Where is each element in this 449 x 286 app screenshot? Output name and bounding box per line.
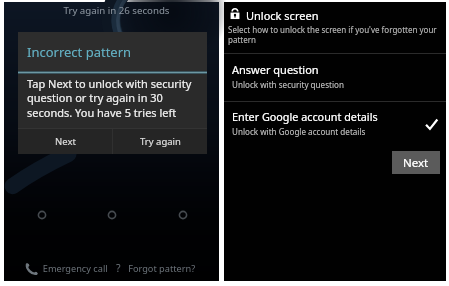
button[interactable]: Next bbox=[392, 151, 440, 174]
staticText: Emergency call bbox=[38, 262, 108, 275]
staticText: Answer question bbox=[232, 62, 319, 77]
button[interactable]: Try again bbox=[113, 129, 207, 154]
button[interactable]: Next bbox=[18, 129, 112, 154]
staticText: Incorrect pattern bbox=[27, 43, 132, 61]
staticText: Try again bbox=[140, 135, 181, 148]
staticText: Forgot pattern? bbox=[121, 262, 196, 275]
button[interactable]: ? bbox=[111, 261, 201, 275]
button[interactable]: Emergency call bbox=[23, 262, 111, 275]
staticText: Enter Google account details bbox=[232, 109, 378, 124]
staticText: Next bbox=[403, 155, 429, 171]
staticText: Tap Next to unlock with security questio… bbox=[27, 76, 201, 121]
staticText: Next bbox=[55, 135, 76, 148]
staticText: ? bbox=[116, 261, 121, 275]
staticText: Unlock with Google account details bbox=[232, 126, 366, 137]
staticText: Unlock screen bbox=[246, 8, 319, 23]
staticText: Unlock with security question bbox=[232, 79, 344, 90]
button[interactable]: Enter Google account details bbox=[224, 102, 446, 142]
button[interactable]: Answer question bbox=[224, 54, 446, 101]
staticText: Try again in 26 seconds bbox=[9, 4, 224, 17]
staticText: Select how to unlock the screen if you'v… bbox=[228, 24, 446, 46]
